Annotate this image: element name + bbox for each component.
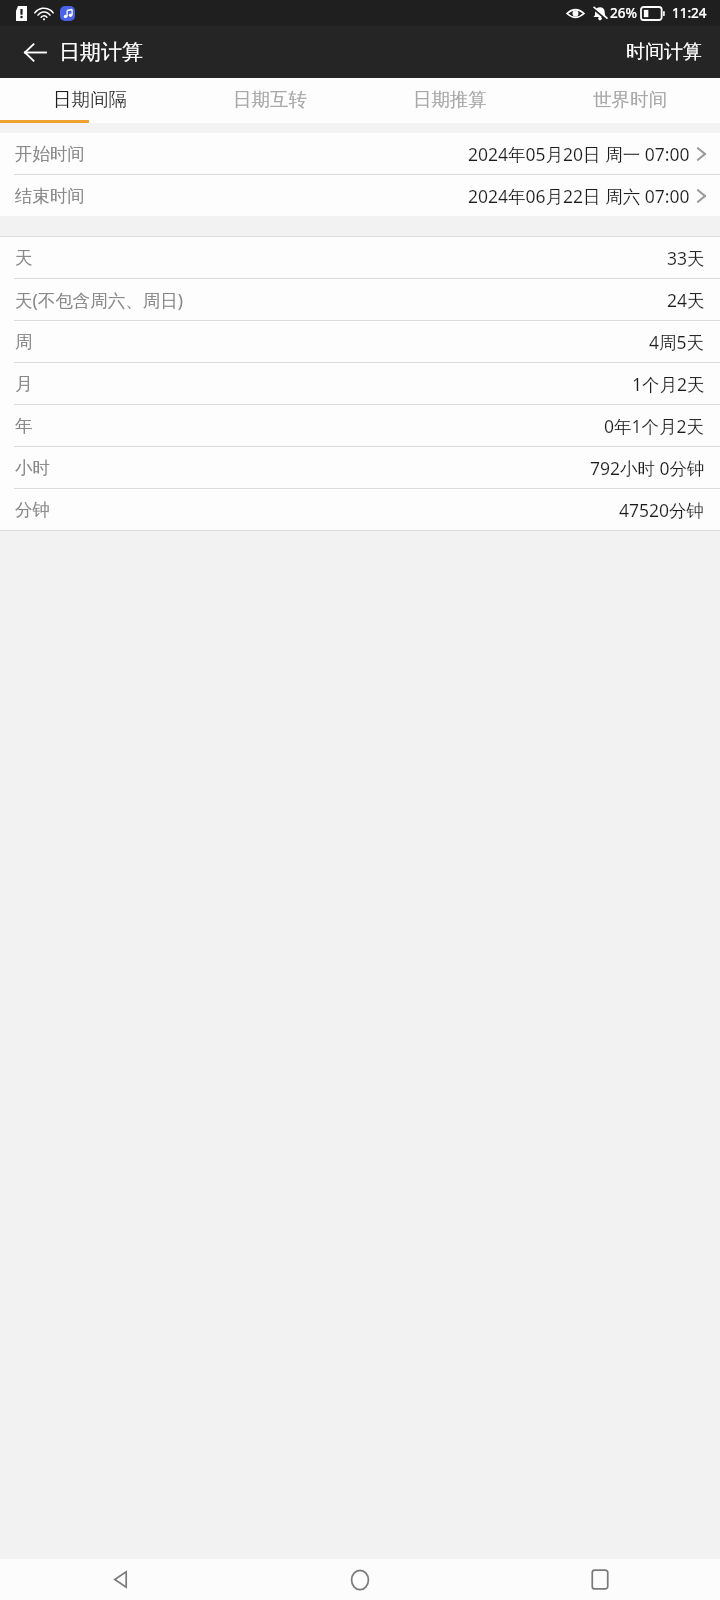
button[interactable]: 天(不包含周六、周日) xyxy=(0,279,720,320)
button[interactable]: 日期推算 xyxy=(360,78,540,120)
staticText: 分钟 xyxy=(15,499,50,521)
staticText: 0年1个月2天 xyxy=(604,414,705,438)
staticText: 结束时间 xyxy=(15,185,85,207)
button[interactable]: 分钟 xyxy=(0,489,720,530)
button[interactable]: 主屏幕 xyxy=(240,1559,480,1600)
staticText: 33天 xyxy=(667,246,705,270)
staticText: 小时 xyxy=(15,457,50,479)
button[interactable]: 月 xyxy=(0,363,720,404)
staticText: 792小时 0分钟 xyxy=(590,456,705,480)
button[interactable]: 日期间隔 xyxy=(0,78,180,120)
button[interactable]: 返回 xyxy=(8,26,62,78)
staticText: 世界时间 xyxy=(593,88,667,111)
staticText: 2024年05月20日 周一 07:00 xyxy=(468,142,690,166)
button[interactable]: 最近任务 xyxy=(480,1559,720,1600)
button[interactable]: 开始时间 xyxy=(0,133,720,174)
staticText: 1个月2天 xyxy=(632,372,705,396)
staticText: 26% xyxy=(610,4,637,22)
button[interactable]: 小时 xyxy=(0,447,720,488)
staticText: 开始时间 xyxy=(15,143,85,165)
button[interactable]: 周 xyxy=(0,321,720,362)
staticText: 月 xyxy=(15,373,33,395)
staticText: 24天 xyxy=(667,288,705,312)
button[interactable]: 年 xyxy=(0,405,720,446)
staticText: 日期推算 xyxy=(413,88,487,111)
staticText: 天 xyxy=(15,247,33,269)
button[interactable]: 世界时间 xyxy=(540,78,720,120)
staticText: 11:24 xyxy=(672,4,707,22)
button[interactable]: 结束时间 xyxy=(0,175,720,216)
button[interactable]: 天 xyxy=(0,237,720,278)
staticText: 日期计算 xyxy=(59,39,143,65)
staticText: 时间计算 xyxy=(626,40,702,64)
button[interactable]: 返回 xyxy=(0,1559,240,1600)
staticText: 天(不包含周六、周日) xyxy=(15,288,183,312)
staticText: 2024年06月22日 周六 07:00 xyxy=(468,184,690,208)
staticText: 日期互转 xyxy=(233,88,307,111)
staticText: 周 xyxy=(15,331,33,353)
button[interactable]: 日期互转 xyxy=(180,78,360,120)
staticText: 年 xyxy=(15,415,33,437)
staticText: 4周5天 xyxy=(649,330,705,354)
button[interactable]: 时间计算 xyxy=(608,26,720,78)
staticText: 日期间隔 xyxy=(53,88,127,111)
staticText: 47520分钟 xyxy=(619,498,705,522)
